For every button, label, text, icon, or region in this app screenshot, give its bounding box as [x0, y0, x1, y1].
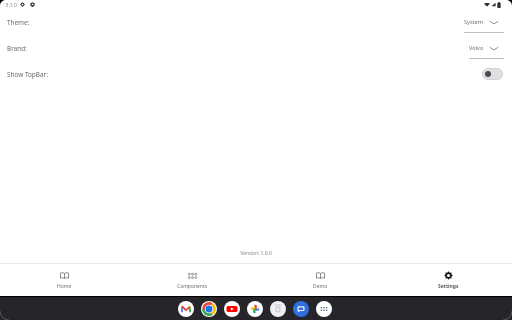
button[interactable]: Components	[128, 264, 256, 296]
button[interactable]: Demo	[256, 264, 384, 296]
button[interactable]: Show TopBar toggle	[482, 68, 503, 80]
button[interactable]: YouTube	[224, 301, 240, 317]
button[interactable]: Photos	[247, 301, 263, 317]
staticText: Show TopBar:	[7, 70, 48, 79]
button[interactable]: System	[464, 18, 504, 33]
staticText: Theme:	[7, 18, 30, 27]
button[interactable]: Gmail	[178, 301, 194, 317]
button[interactable]: Volvo	[469, 44, 504, 59]
button[interactable]: Settings	[384, 264, 512, 296]
button[interactable]: All apps	[316, 301, 332, 317]
staticText: Home	[57, 283, 72, 290]
staticText: System	[464, 18, 484, 26]
staticText: Settings	[438, 283, 459, 290]
button[interactable]: Home	[0, 264, 128, 296]
staticText: Demo	[313, 283, 328, 290]
button[interactable]: Drive	[270, 301, 286, 317]
button[interactable]: Chrome	[201, 301, 217, 317]
staticText: Components	[177, 283, 208, 290]
staticText: Volvo	[469, 44, 484, 52]
staticText: Brand:	[7, 44, 27, 53]
staticText: Version: 1.0.0	[0, 250, 512, 257]
staticText: 3:10	[5, 1, 17, 9]
button[interactable]: Messages	[293, 301, 309, 317]
